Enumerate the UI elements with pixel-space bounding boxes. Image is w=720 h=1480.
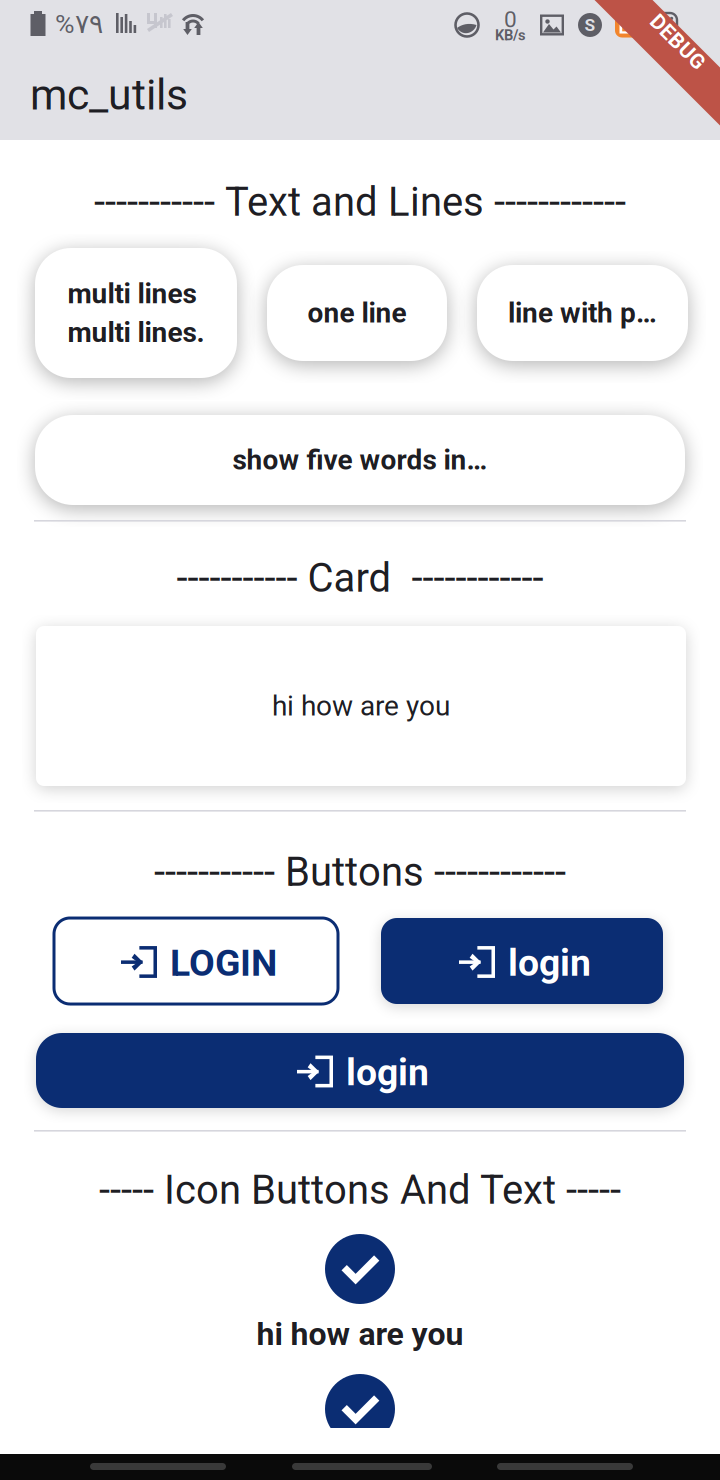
staticText: ------------ <box>401 555 543 601</box>
staticText: %٧٩ <box>55 8 103 40</box>
button[interactable]: login <box>36 1033 684 1108</box>
staticText: hi how are you <box>256 1315 463 1353</box>
button[interactable]: Confirm <box>325 1374 395 1444</box>
staticText: 0 <box>504 6 517 33</box>
staticText: ----------- <box>176 555 297 601</box>
staticText: hi how are you <box>272 690 450 722</box>
staticText: multi lines multi lines. <box>67 277 204 349</box>
staticText: login <box>346 1051 429 1094</box>
staticText: line with p… <box>508 297 657 329</box>
staticText: ------------ <box>434 849 566 895</box>
staticText: LOGIN <box>170 941 277 985</box>
staticText: DEBUG <box>643 29 712 54</box>
staticText: one line <box>307 297 406 329</box>
button[interactable]: Confirm <box>325 1234 395 1304</box>
button[interactable]: LOGIN <box>54 918 338 1004</box>
staticText: Buttons <box>285 849 424 895</box>
staticText: ------------ <box>494 179 626 225</box>
staticText: Icon Buttons And Text <box>164 1167 556 1213</box>
staticText: Card <box>307 555 391 601</box>
staticText: S <box>584 15 595 35</box>
staticText: ----- <box>566 1167 621 1213</box>
staticText: ----------- <box>154 849 275 895</box>
staticText: ----------- <box>94 179 215 225</box>
staticText: KB/s <box>495 27 526 44</box>
staticText: Text and Lines <box>225 179 484 225</box>
staticText: mc_utils <box>30 70 188 120</box>
button[interactable]: login <box>381 918 663 1004</box>
staticText: show five words in… <box>232 444 487 476</box>
staticText: login <box>508 941 591 985</box>
staticText: ----- <box>99 1167 154 1213</box>
